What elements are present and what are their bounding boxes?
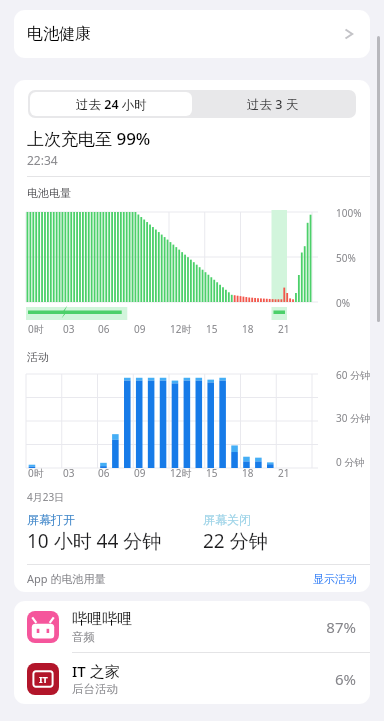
staticText: 100% <box>336 206 362 220</box>
staticText: 屏幕关闭 <box>203 512 251 527</box>
staticText: 0时 <box>28 322 44 336</box>
staticText: 12时 <box>170 466 192 480</box>
staticText: 过去 3 天 <box>247 96 299 113</box>
staticText: 0时 <box>28 466 44 480</box>
staticText: 电池电量 <box>27 186 71 200</box>
staticText: 电池健康 <box>27 24 91 44</box>
staticText: 活动 <box>27 350 49 364</box>
staticText: 06 <box>98 322 110 336</box>
staticText: 50% <box>336 251 356 265</box>
staticText: IT 之家 <box>72 661 120 681</box>
staticText: 30 分钟 <box>336 411 370 425</box>
staticText: 哔哩哔哩 <box>72 610 132 629</box>
staticText: 4月23日 <box>27 490 65 504</box>
button[interactable]: 电池健康 <box>14 10 370 58</box>
staticText: 09 <box>134 322 146 336</box>
staticText: 87% <box>326 617 356 637</box>
staticText: 21 <box>278 322 290 336</box>
staticText: 10 小时 44 分钟 <box>27 528 162 554</box>
staticText: App 的电池用量 <box>27 571 106 586</box>
staticText: 音频 <box>72 630 95 644</box>
staticText: 上次充电至 99% <box>27 127 151 150</box>
staticText: 0 分钟 <box>336 455 365 469</box>
button[interactable]: 哔哩哔哩 <box>14 601 370 652</box>
staticText: 12时 <box>170 322 192 336</box>
staticText: 60 分钟 <box>336 368 370 382</box>
staticText: 屏幕打开 <box>27 512 75 527</box>
staticText: 03 <box>63 466 75 480</box>
staticText: 18 <box>242 466 254 480</box>
button[interactable]: 过去 3 天 <box>192 92 354 116</box>
staticText: 21 <box>278 466 290 480</box>
button[interactable]: IT <box>14 653 370 704</box>
button[interactable]: 显示活动 <box>313 572 357 586</box>
staticText: 15 <box>206 322 218 336</box>
staticText: 18 <box>242 322 254 336</box>
staticText: 22:34 <box>27 152 58 168</box>
staticText: 06 <box>98 466 110 480</box>
staticText: 后台活动 <box>72 682 118 696</box>
staticText: 09 <box>134 466 146 480</box>
staticText: 03 <box>63 322 75 336</box>
staticText: 22 分钟 <box>203 528 268 554</box>
staticText: 6% <box>334 669 356 689</box>
button[interactable]: 过去 24 小时 <box>30 92 192 116</box>
staticText: IT <box>39 673 48 685</box>
staticText: 显示活动 <box>313 572 357 586</box>
staticText: 过去 24 小时 <box>76 96 147 113</box>
staticText: 15 <box>206 466 218 480</box>
staticText: 0% <box>336 296 351 310</box>
